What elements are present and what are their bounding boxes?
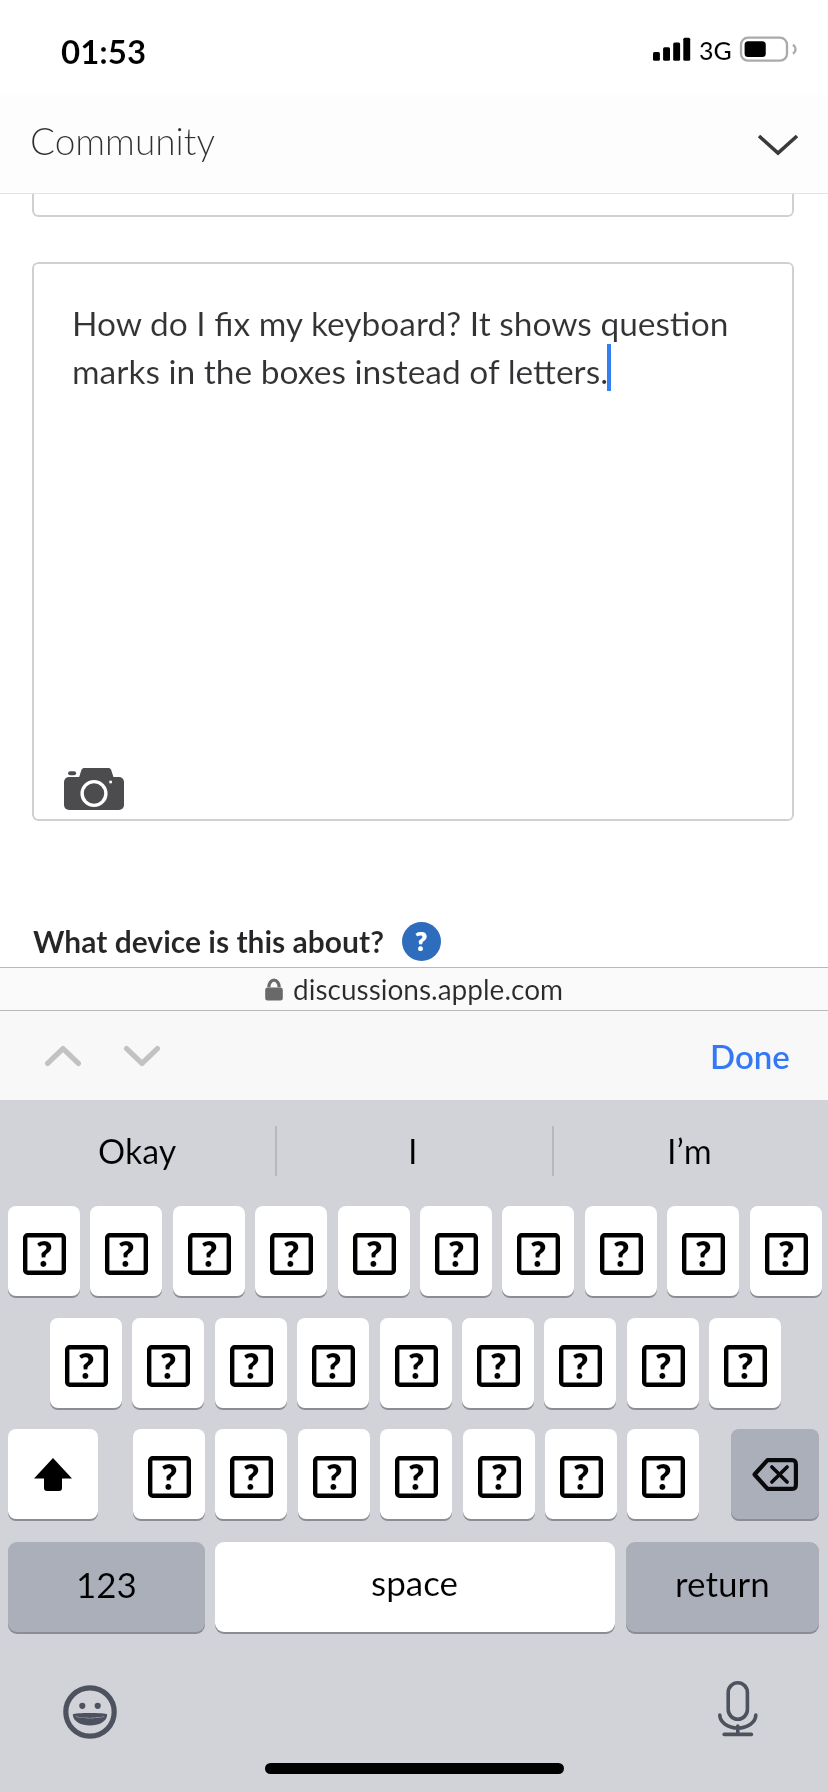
button[interactable]: Letter key (750, 1206, 822, 1296)
staticText: Community (30, 118, 216, 162)
button[interactable]: Emoji keyboard (52, 1673, 128, 1751)
staticText: ? (161, 1455, 178, 1497)
button[interactable]: Backspace (731, 1429, 819, 1519)
button[interactable]: I’m (554, 1100, 828, 1200)
button[interactable]: Letter key (50, 1318, 122, 1408)
staticText: What device is this about? (33, 923, 384, 959)
button[interactable]: Letter key (215, 1318, 287, 1408)
button[interactable]: Previous field (25, 1011, 101, 1100)
staticText: ? (36, 1232, 53, 1274)
staticText: I (408, 1130, 418, 1171)
button[interactable]: Help (402, 922, 441, 961)
staticText: How do I fix my keyboard? It shows quest… (72, 303, 738, 392)
staticText: ? (326, 1455, 343, 1497)
button[interactable]: Letter key (297, 1318, 369, 1408)
button[interactable]: Letter key (709, 1318, 781, 1408)
button[interactable]: Letter key (132, 1318, 204, 1408)
button[interactable]: Letter key (420, 1206, 492, 1296)
button[interactable]: Done (692, 1011, 808, 1100)
staticText: 01:53 (61, 31, 147, 71)
button[interactable] (32, 194, 794, 217)
staticText: ? (655, 1455, 672, 1497)
staticText: ? (408, 1344, 425, 1386)
staticText: ? (201, 1232, 218, 1274)
staticText: ? (325, 1344, 342, 1386)
staticText: ? (366, 1232, 383, 1274)
staticText: I’m (667, 1130, 712, 1171)
button[interactable]: Letter key (338, 1206, 410, 1296)
staticText: 3G (699, 35, 732, 65)
button[interactable]: space (215, 1542, 615, 1632)
staticText: 123 (76, 1563, 137, 1605)
button[interactable]: Letter key (585, 1206, 657, 1296)
button[interactable]: Letter key (544, 1318, 616, 1408)
button[interactable]: Letter key (502, 1206, 574, 1296)
button[interactable]: Okay (0, 1100, 275, 1200)
button[interactable]: Letter key (215, 1429, 287, 1519)
staticText: ? (415, 925, 428, 956)
staticText: ? (655, 1344, 672, 1386)
button[interactable]: Letter key (255, 1206, 327, 1296)
button[interactable]: Letter key (173, 1206, 245, 1296)
button[interactable]: discussions.apple.com (264, 972, 564, 1006)
button[interactable]: Letter key (627, 1429, 699, 1519)
staticText: ? (408, 1455, 425, 1497)
button[interactable]: Letter key (380, 1318, 452, 1408)
staticText: ? (243, 1455, 260, 1497)
staticText: ? (118, 1232, 135, 1274)
staticText: ? (243, 1344, 260, 1386)
staticText: Okay (98, 1130, 177, 1171)
button[interactable]: I (277, 1100, 552, 1200)
staticText: ? (613, 1232, 630, 1274)
button[interactable]: How do I fix my keyboard? It shows quest… (32, 262, 794, 821)
staticText: discussions.apple.com (293, 972, 564, 1006)
staticText: ? (283, 1232, 300, 1274)
staticText: ? (572, 1344, 589, 1386)
button[interactable]: 123 (8, 1542, 205, 1632)
button[interactable]: return (626, 1542, 819, 1632)
button[interactable]: Letter key (463, 1429, 535, 1519)
button[interactable]: Letter key (298, 1429, 370, 1519)
button[interactable]: Letter key (462, 1318, 534, 1408)
staticText: ? (573, 1455, 590, 1497)
button[interactable]: Next field (104, 1011, 180, 1100)
button[interactable]: Shift (8, 1429, 98, 1519)
button[interactable]: Letter key (90, 1206, 162, 1296)
button[interactable]: Letter key (545, 1429, 617, 1519)
staticText: ? (160, 1344, 177, 1386)
staticText: Done (710, 1036, 790, 1076)
staticText: space (371, 1561, 459, 1603)
button[interactable]: Dictation (700, 1670, 776, 1748)
button[interactable]: Letter key (380, 1429, 452, 1519)
staticText: ? (778, 1232, 795, 1274)
staticText: ? (490, 1344, 507, 1386)
staticText: ? (737, 1344, 754, 1386)
button[interactable]: Attach photo (52, 758, 138, 821)
button[interactable]: Letter key (8, 1206, 80, 1296)
button[interactable]: Letter key (133, 1429, 205, 1519)
staticText: return (675, 1562, 770, 1604)
staticText: ? (491, 1455, 508, 1497)
staticText: ? (695, 1232, 712, 1274)
staticText: ? (78, 1344, 95, 1386)
button[interactable]: Letter key (667, 1206, 739, 1296)
staticText: ? (448, 1232, 465, 1274)
button[interactable]: Expand section (728, 95, 828, 194)
button[interactable]: Letter key (627, 1318, 699, 1408)
staticText: ? (530, 1232, 547, 1274)
button[interactable]: Community (0, 95, 828, 194)
